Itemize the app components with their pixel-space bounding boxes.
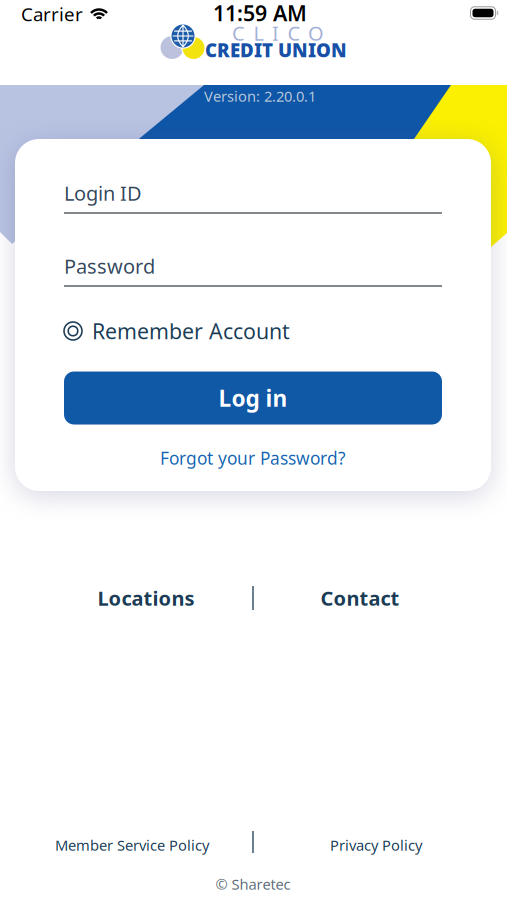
button[interactable]: Remember Account (64, 317, 442, 345)
button[interactable]: Locations (97, 585, 194, 611)
staticText: 11:59 AM (213, 0, 307, 27)
staticText: Remember Account (92, 317, 290, 345)
staticText: Forgot your Password? (160, 446, 346, 469)
staticText: Contact (320, 585, 399, 611)
staticText: Version: 2.20.0.1 (204, 86, 316, 106)
staticText: Password (64, 253, 155, 279)
staticText: Member Service Policy (55, 835, 209, 855)
button[interactable]: Contact (320, 585, 399, 611)
staticText: CLICO (232, 20, 324, 46)
staticText: Locations (97, 585, 194, 611)
staticText: © Sharetec (215, 874, 290, 894)
staticText: Privacy Policy (330, 835, 422, 855)
staticText: Carrier (21, 2, 83, 26)
button[interactable]: Privacy Policy (330, 835, 422, 855)
staticText: Login ID (64, 180, 142, 206)
staticText: Log in (218, 383, 287, 413)
button[interactable]: Member Service Policy (55, 835, 209, 855)
staticText: CREDIT UNION (205, 38, 347, 62)
button[interactable]: Log in (64, 371, 442, 424)
button[interactable]: Forgot your Password? (160, 446, 346, 469)
